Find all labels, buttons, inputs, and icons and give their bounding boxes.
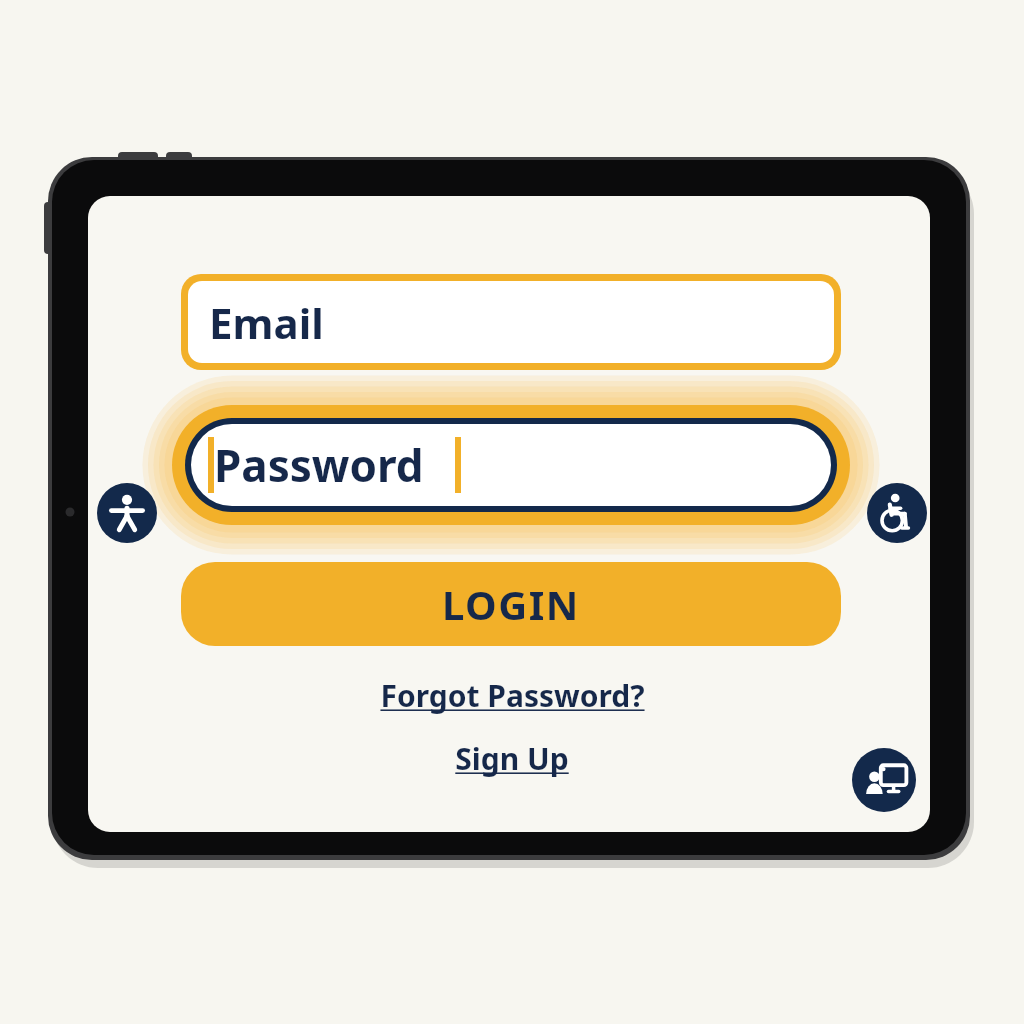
staticText: Password [214, 435, 424, 495]
staticText: Forgot Password? [380, 675, 645, 716]
button[interactable]: Screen reader assistance [852, 748, 916, 812]
button[interactable]: Email [181, 274, 841, 370]
button[interactable]: Wheelchair accessibility [867, 483, 927, 543]
staticText: LOGIN [442, 577, 580, 631]
button[interactable]: LOGIN [181, 562, 841, 646]
staticText: Sign Up [455, 738, 569, 779]
staticText: Email [209, 294, 324, 351]
button[interactable]: Password [172, 405, 850, 525]
button[interactable]: Sign Up [412, 732, 612, 784]
button[interactable]: Accessibility options [97, 483, 157, 543]
button[interactable]: Forgot Password? [352, 668, 672, 722]
